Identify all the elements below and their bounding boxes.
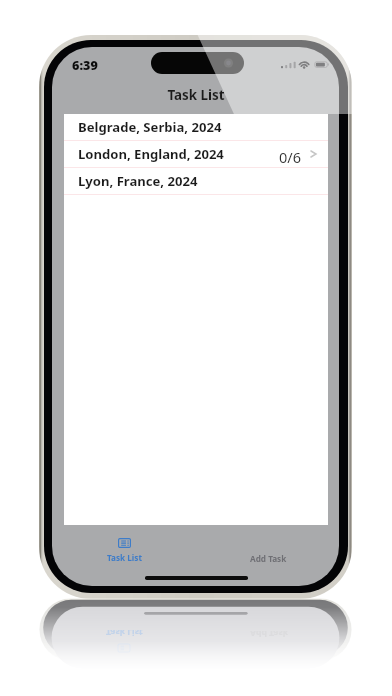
button[interactable]: Lyon, France, 2024 [64,168,328,194]
staticText: Add Task [250,553,287,564]
staticText: Belgrade, Serbia, 2024 [78,118,222,136]
staticText: London, England, 2024 [78,145,224,163]
staticText: 0/6 [279,147,301,167]
other: Task List [118,538,131,548]
button[interactable]: London, England, 2024 [64,141,328,167]
button[interactable]: Task List [53,532,196,568]
staticText: Task List [106,630,143,638]
staticText: Task List [167,86,225,104]
staticText: 6:39 [72,57,98,74]
staticText: Task List [107,552,142,563]
button[interactable]: Belgrade, Serbia, 2024 [64,114,328,140]
staticText: Lyon, France, 2024 [78,172,198,190]
staticText: Add Task [250,631,289,639]
button[interactable]: Add Task [196,532,339,568]
